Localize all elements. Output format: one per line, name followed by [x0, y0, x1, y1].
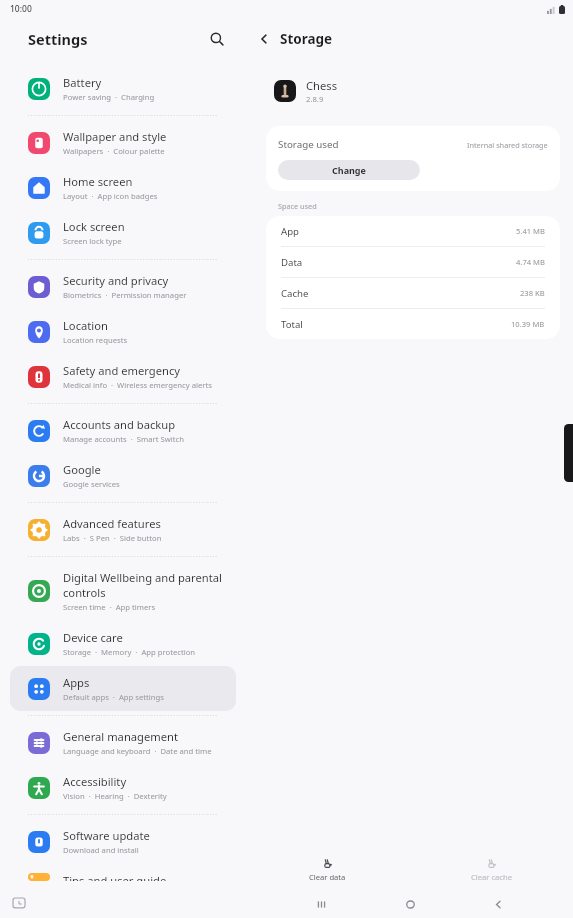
button[interactable]: Wallpaper and style: [10, 120, 236, 165]
staticText: Clear cache: [471, 872, 512, 882]
staticText: 4.74 MB: [516, 257, 545, 267]
staticText: Accounts and backup: [63, 417, 176, 432]
staticText: Safety and emergency: [63, 363, 180, 378]
button[interactable]: Recents: [308, 891, 334, 917]
button[interactable]: Apps: [10, 666, 236, 711]
staticText: 5.41 MB: [516, 226, 545, 236]
staticText: Language and keyboard · Date and time: [63, 746, 212, 756]
staticText: Total: [281, 318, 303, 331]
button[interactable]: Home: [397, 891, 423, 917]
button[interactable]: Clear data: [246, 850, 409, 890]
staticText: Device care: [63, 630, 123, 645]
button[interactable]: Software update: [10, 819, 236, 864]
button[interactable]: Tips and user guide: [10, 864, 236, 890]
staticText: Default apps · App settings: [63, 692, 164, 702]
staticText: Digital Wellbeing and parental controls: [63, 570, 224, 600]
button[interactable]: Clear cache: [409, 850, 573, 890]
button[interactable]: Google: [10, 453, 236, 498]
staticText: Storage · Memory · App protection: [63, 647, 196, 657]
button[interactable]: Cache: [266, 278, 560, 308]
staticText: Vision · Hearing · Dexterity: [63, 791, 167, 801]
button[interactable]: General management: [10, 720, 236, 765]
staticText: Location: [63, 318, 108, 333]
staticText: 2.8.9: [306, 94, 324, 104]
staticText: Lock screen: [63, 219, 125, 234]
staticText: Layout · App icon badges: [63, 191, 158, 201]
staticText: Accessibility: [63, 774, 127, 789]
staticText: Cache: [281, 287, 309, 300]
staticText: Medical info · Wireless emergency alerts: [63, 380, 212, 390]
button[interactable]: Total: [266, 309, 560, 339]
staticText: Advanced features: [63, 516, 161, 531]
staticText: Google services: [63, 479, 120, 489]
staticText: Download and install: [63, 845, 139, 855]
button[interactable]: Search: [202, 24, 232, 54]
staticText: Home screen: [63, 174, 133, 189]
button[interactable]: Advanced features: [10, 507, 236, 552]
staticText: Location requests: [63, 335, 128, 345]
staticText: 10.39 MB: [511, 319, 545, 329]
staticText: Tips and user guide: [63, 873, 167, 881]
staticText: General management: [63, 729, 178, 744]
button[interactable]: Accessibility: [10, 765, 236, 810]
staticText: Change: [332, 164, 366, 176]
staticText: Wallpaper and style: [63, 129, 167, 144]
button[interactable]: Back: [485, 891, 511, 917]
button[interactable]: Safety and emergency: [10, 354, 236, 399]
staticText: Space used: [278, 201, 317, 211]
staticText: App: [281, 225, 299, 238]
button[interactable]: Back: [250, 25, 278, 53]
staticText: Chess: [306, 78, 338, 93]
button[interactable]: Device care: [10, 621, 236, 666]
button[interactable]: Security and privacy: [10, 264, 236, 309]
staticText: Screen lock type: [63, 236, 122, 246]
button[interactable]: Change: [278, 160, 420, 180]
staticText: Clear data: [309, 872, 346, 882]
staticText: Wallpapers · Colour palette: [63, 146, 165, 156]
button[interactable]: App: [266, 216, 560, 246]
staticText: Storage used: [278, 138, 339, 151]
staticText: Manage accounts · Smart Switch: [63, 434, 184, 444]
button[interactable]: Location: [10, 309, 236, 354]
staticText: Labs · S Pen · Side button: [63, 533, 162, 543]
button[interactable]: Accounts and backup: [10, 408, 236, 453]
staticText: Settings: [28, 29, 88, 49]
staticText: Battery: [63, 75, 102, 90]
staticText: 238 KB: [520, 288, 545, 298]
staticText: Google: [63, 462, 101, 477]
staticText: Storage: [280, 30, 333, 48]
button[interactable]: Home screen: [10, 165, 236, 210]
staticText: Data: [281, 256, 303, 269]
staticText: Screen time · App timers: [63, 602, 156, 612]
staticText: Biometrics · Permission manager: [63, 290, 187, 300]
button[interactable]: Data: [266, 247, 560, 277]
button[interactable]: Digital Wellbeing and parental controls: [10, 561, 236, 621]
staticText: Software update: [63, 828, 150, 843]
button[interactable]: Screenshot: [11, 896, 27, 912]
button[interactable]: Battery: [10, 66, 236, 111]
staticText: Apps: [63, 675, 90, 690]
staticText: Internal shared storage: [467, 140, 548, 150]
staticText: Security and privacy: [63, 273, 169, 288]
staticText: Power saving · Charging: [63, 92, 155, 102]
button[interactable]: Edge panel: [564, 424, 573, 482]
staticText: 10:00: [10, 3, 32, 15]
button[interactable]: Lock screen: [10, 210, 236, 255]
